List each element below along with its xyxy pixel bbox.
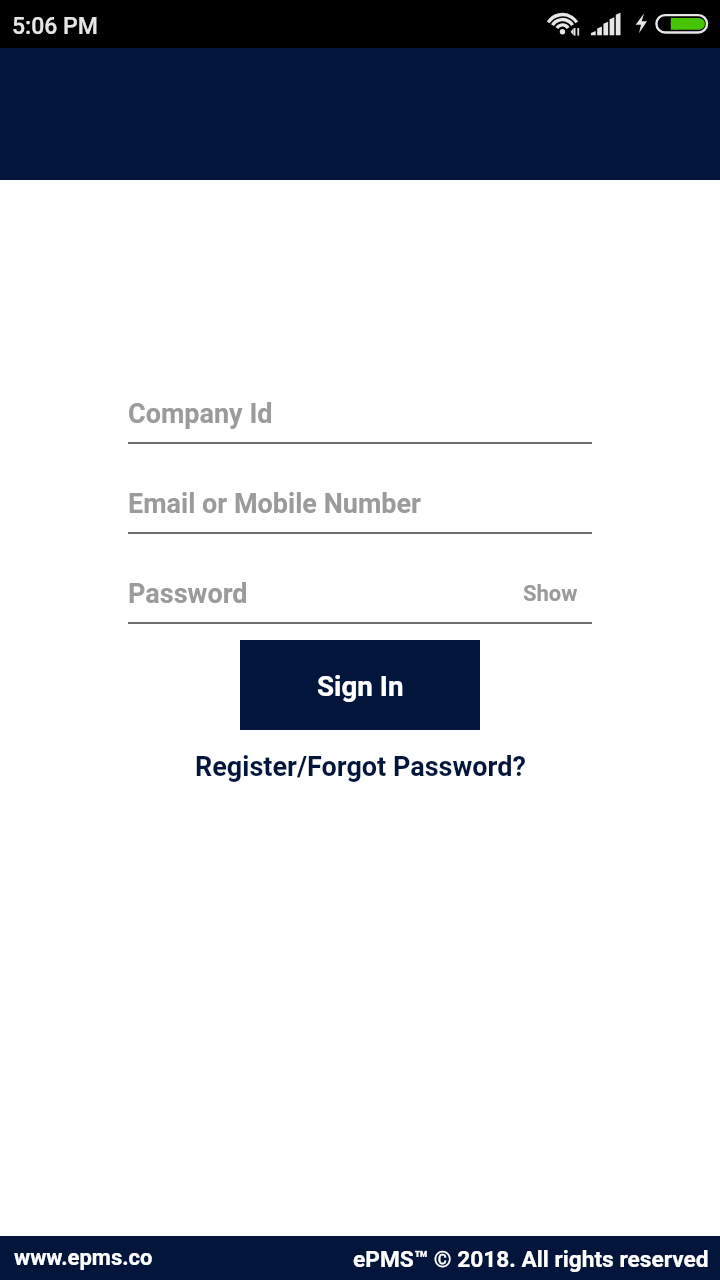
staticText: 5:06 PM (12, 13, 98, 40)
button[interactable]: Sign In (240, 640, 480, 730)
staticText: Sign In (317, 670, 404, 703)
staticText: Password (128, 578, 248, 610)
button[interactable]: Register/Forgot Password? (189, 748, 532, 786)
button[interactable]: Show (523, 581, 578, 607)
staticText: Show (523, 581, 578, 607)
staticText: ePMS™ © 2018. All rights reserved (353, 1246, 709, 1273)
staticText: Company Id (128, 398, 273, 430)
button[interactable]: Password (128, 560, 592, 628)
button[interactable]: Email or Mobile Number (128, 470, 592, 538)
staticText: Email or Mobile Number (128, 488, 421, 520)
button[interactable]: Company Id (128, 380, 592, 448)
button[interactable]: www.epms.co (14, 1245, 153, 1271)
